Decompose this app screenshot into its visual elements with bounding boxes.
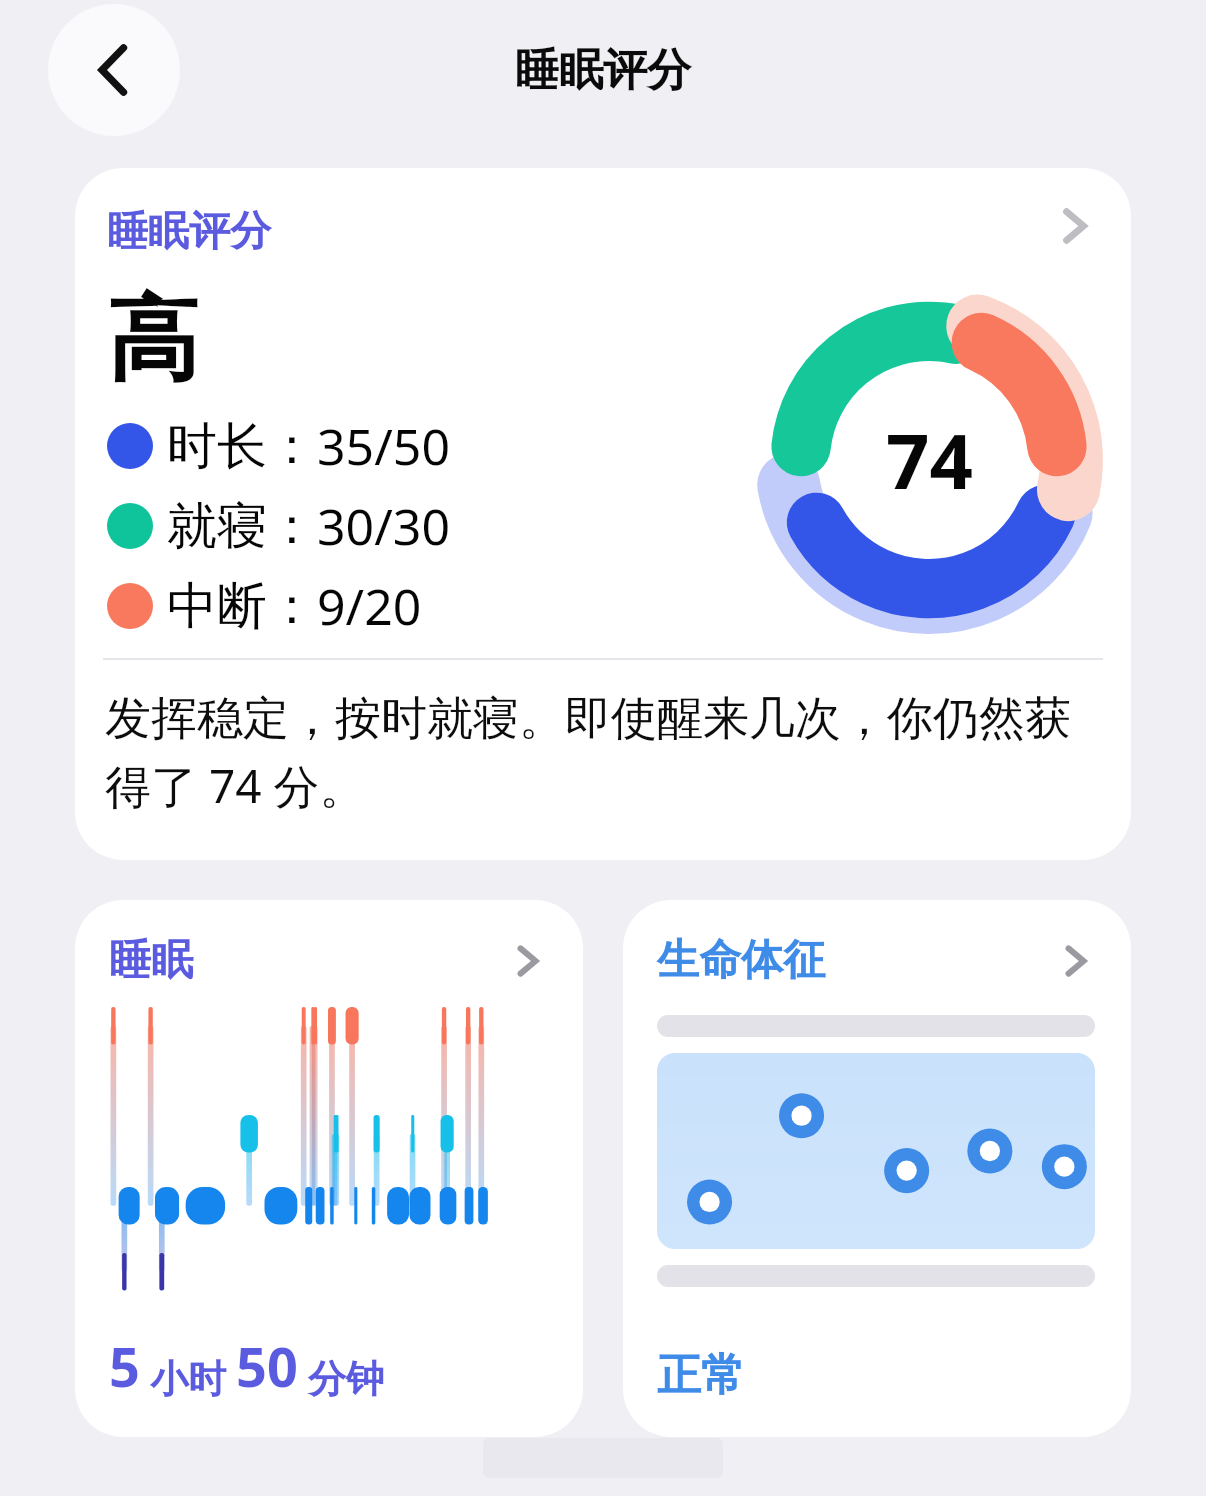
staticText: 分钟 [298, 1351, 384, 1403]
staticText: 50 [236, 1329, 298, 1403]
staticText: 睡眠评分 [515, 43, 691, 98]
button[interactable]: 生命体征 [623, 900, 1131, 1437]
staticText: 35/50 [317, 412, 450, 480]
button[interactable]: 睡眠评分 [75, 168, 1131, 860]
staticText: 睡眠 [109, 934, 193, 987]
staticText: 时长： [167, 415, 317, 478]
staticText: 高 [107, 282, 199, 398]
staticText: 74 [886, 408, 973, 512]
staticText: 正常 [657, 1348, 745, 1403]
staticText: 5 [109, 1329, 140, 1403]
staticText: 9/20 [317, 572, 422, 640]
staticText: 就寝： [167, 495, 317, 558]
button[interactable]: Back [48, 4, 180, 136]
button[interactable]: 睡眠 [75, 900, 583, 1437]
staticText: 小时 [140, 1351, 236, 1403]
staticText: 生命体征 [657, 934, 825, 987]
staticText: 30/30 [317, 492, 450, 560]
staticText: 中断： [167, 575, 317, 638]
staticText: 睡眠评分 [107, 206, 271, 258]
staticText: 发挥稳定，按时就寝。即使醒来几次，你仍然获得了 74 分。 [105, 690, 1095, 816]
